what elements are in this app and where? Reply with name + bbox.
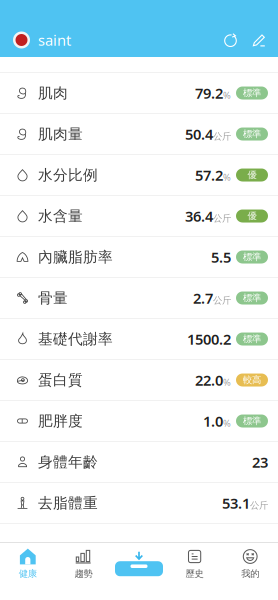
staticText: 2.7 (193, 288, 213, 308)
staticText: 基礎代謝率 (38, 330, 113, 348)
staticText: 標準 (243, 333, 261, 345)
staticText: 身體年齡 (38, 453, 98, 471)
staticText: 肥胖度 (38, 412, 83, 430)
staticText: 去脂體重 (38, 494, 98, 512)
button[interactable]: 基礎代謝率 (0, 319, 278, 360)
staticText: 公斤 (213, 213, 231, 224)
button[interactable]: 趨勢 (56, 548, 111, 579)
staticText: 標準 (243, 128, 261, 140)
staticText: % (223, 171, 231, 183)
staticText: % (223, 417, 231, 429)
button[interactable]: 肌肉量 (0, 114, 278, 155)
staticText: 趨勢 (74, 568, 92, 579)
staticText: 23 (252, 452, 268, 472)
staticText: 79.2 (195, 83, 223, 103)
staticText: 57.2 (195, 165, 223, 185)
button[interactable]: 去脂體重 (0, 483, 278, 524)
staticText: % (223, 376, 231, 388)
button[interactable]: 水含量 (0, 196, 278, 237)
button[interactable]: 肥胖度 (0, 401, 278, 442)
button[interactable]: 內臟脂肪率 (0, 237, 278, 278)
button[interactable]: 肌肉 (0, 73, 278, 114)
button[interactable]: Edit (245, 26, 274, 53)
staticText: 我的 (241, 568, 259, 579)
staticText: 53.1 (222, 493, 250, 513)
staticText: 1500.2 (187, 329, 231, 349)
staticText: 36.4 (185, 206, 213, 226)
staticText: 5.5 (211, 247, 231, 267)
button[interactable]: 水分比例 (0, 155, 278, 196)
staticText: 優 (247, 169, 256, 181)
staticText: 肌肉量 (38, 125, 83, 143)
staticText: 公斤 (250, 500, 268, 511)
button[interactable]: 骨量 (0, 278, 278, 319)
button[interactable]: 蛋白質 (0, 360, 278, 401)
staticText: 水含量 (38, 207, 83, 225)
staticText: 歷史 (186, 568, 204, 579)
staticText: 骨量 (38, 289, 68, 307)
staticText: 肌肉 (38, 84, 68, 102)
staticText: 標準 (243, 292, 261, 304)
staticText: 標準 (243, 251, 261, 263)
staticText: 內臟脂肪率 (38, 248, 113, 266)
staticText: 50.4 (185, 124, 213, 144)
staticText: 優 (247, 210, 256, 222)
staticText: 較高 (243, 374, 261, 386)
staticText: 22.0 (195, 370, 223, 390)
staticText: 1.0 (203, 411, 223, 431)
button[interactable]: 我的 (222, 548, 278, 579)
button[interactable]: 歷史 (167, 548, 222, 579)
staticText: 水分比例 (38, 166, 98, 184)
staticText: 標準 (243, 87, 261, 99)
staticText: 健康 (19, 568, 37, 579)
button[interactable]: Refresh (216, 26, 245, 53)
staticText: 公斤 (213, 295, 231, 306)
staticText: saint (38, 30, 71, 50)
staticText: 蛋白質 (38, 371, 83, 389)
button[interactable]: 健康 (0, 548, 56, 579)
staticText: 標準 (243, 415, 261, 427)
button[interactable]: 身體年齡 (0, 442, 278, 483)
staticText: 公斤 (213, 131, 231, 142)
button[interactable]: Measure (111, 551, 167, 576)
staticText: % (223, 89, 231, 101)
